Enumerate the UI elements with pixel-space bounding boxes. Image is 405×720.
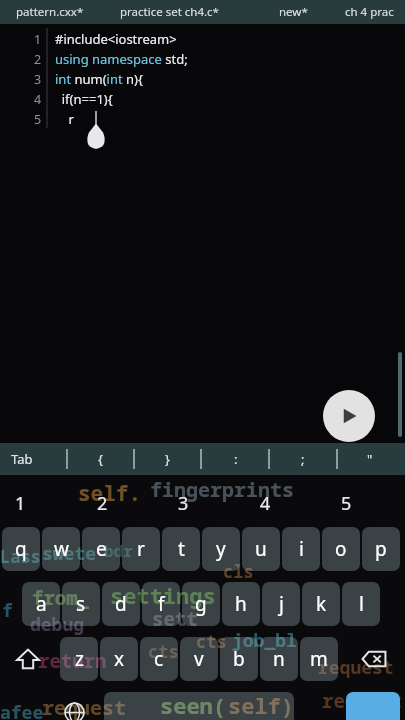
button[interactable]: { (72, 443, 128, 475)
staticText: u (255, 536, 267, 562)
staticText: : (234, 450, 238, 468)
button[interactable]: i (282, 527, 320, 571)
staticText: e (96, 536, 107, 562)
button[interactable]: q (2, 527, 40, 571)
staticText: self. (78, 479, 141, 508)
staticText: cts (148, 640, 179, 663)
button[interactable]: x (100, 637, 138, 681)
staticText: using namespace std; (55, 50, 188, 68)
button[interactable]: n (260, 637, 298, 681)
staticText: n (273, 646, 285, 672)
staticText: c (154, 646, 164, 672)
staticText: 1 (34, 31, 42, 48)
button[interactable]: b (220, 637, 258, 681)
staticText: h (235, 591, 247, 617)
button[interactable]: e (82, 527, 120, 571)
staticText: ; (301, 450, 305, 468)
staticText: i (299, 536, 304, 562)
button[interactable]: 1 (0, 488, 41, 518)
staticText: t (178, 536, 185, 562)
button[interactable]: 5 (326, 488, 367, 518)
button[interactable]: c (140, 637, 178, 681)
staticText: m (310, 646, 328, 672)
button[interactable]: j (262, 582, 300, 626)
button[interactable]: Shift (4, 637, 52, 681)
button[interactable]: Change language (52, 692, 96, 720)
staticText: Lass (0, 545, 41, 568)
staticText: z (75, 646, 84, 672)
button[interactable]: y (202, 527, 240, 571)
button[interactable]: practice set ch4.c* (118, 0, 221, 24)
staticText: 5 (34, 111, 42, 128)
button[interactable]: z (60, 637, 98, 681)
staticText: 2 (97, 491, 108, 516)
button[interactable]: Enter (346, 692, 400, 720)
button[interactable]: g (182, 582, 220, 626)
staticText: if(n==1){ (55, 90, 113, 108)
staticText: 4 (34, 91, 42, 108)
staticText: request (322, 688, 402, 714)
button[interactable]: 2 (82, 488, 123, 518)
button[interactable]: 4 (245, 488, 286, 518)
staticText: swete (42, 541, 96, 566)
staticText: f (2, 598, 13, 623)
staticText: y (216, 536, 226, 562)
staticText: cls (223, 560, 254, 583)
staticText: w (54, 536, 69, 562)
button[interactable]: v (180, 637, 218, 681)
staticText: 4 (260, 491, 271, 516)
button[interactable]: : (208, 443, 264, 475)
button[interactable]: w (42, 527, 80, 571)
staticText: b (233, 646, 245, 672)
button[interactable]: ; (275, 443, 331, 475)
staticText: job_bl (232, 628, 297, 653)
staticText: q (15, 536, 27, 562)
staticText: v (194, 646, 204, 672)
button[interactable]: p (362, 527, 400, 571)
staticText: pattern.cxx* (16, 4, 84, 20)
staticText: self) (228, 690, 295, 720)
staticText: bdr (104, 540, 133, 562)
button[interactable]: pattern.cxx* (14, 0, 86, 24)
staticText: afee (0, 700, 44, 720)
button[interactable]: h (222, 582, 260, 626)
button[interactable]: s (62, 582, 100, 626)
staticText: } (165, 450, 170, 468)
staticText: g (195, 591, 207, 617)
staticText: k (316, 591, 327, 617)
button[interactable]: u (242, 527, 280, 571)
button[interactable]: Backspace (348, 637, 400, 681)
staticText: from_ (32, 585, 90, 611)
staticText: 3 (178, 491, 189, 516)
button[interactable]: 3 (163, 488, 204, 518)
button[interactable]: a (22, 582, 60, 626)
staticText: r (137, 536, 145, 562)
staticText: f (158, 591, 165, 617)
button[interactable]: d (102, 582, 140, 626)
staticText: new* (279, 4, 308, 20)
staticText: request (318, 655, 394, 680)
staticText: ch 4 prac (345, 4, 394, 20)
staticText: debug (30, 612, 84, 637)
staticText: cts (196, 630, 227, 653)
button[interactable]: Tab (0, 443, 50, 475)
button[interactable]: l (342, 582, 380, 626)
staticText: sett (152, 606, 198, 632)
button[interactable]: } (139, 443, 195, 475)
button[interactable]: o (322, 527, 360, 571)
button[interactable]: " (342, 443, 398, 475)
button[interactable]: r (122, 527, 160, 571)
staticText: j (279, 591, 284, 617)
button[interactable]: Space (104, 692, 294, 720)
button[interactable]: Symbols (4, 692, 48, 720)
button[interactable]: t (162, 527, 200, 571)
button[interactable]: Run (323, 390, 375, 442)
button[interactable]: new* (277, 0, 310, 24)
button[interactable]: k (302, 582, 340, 626)
button[interactable]: m (300, 637, 338, 681)
staticText: practice set ch4.c* (120, 4, 219, 20)
button[interactable]: ch 4 prac (343, 0, 396, 24)
staticText: d (115, 591, 127, 617)
staticText: s (76, 591, 86, 617)
button[interactable]: f (142, 582, 180, 626)
